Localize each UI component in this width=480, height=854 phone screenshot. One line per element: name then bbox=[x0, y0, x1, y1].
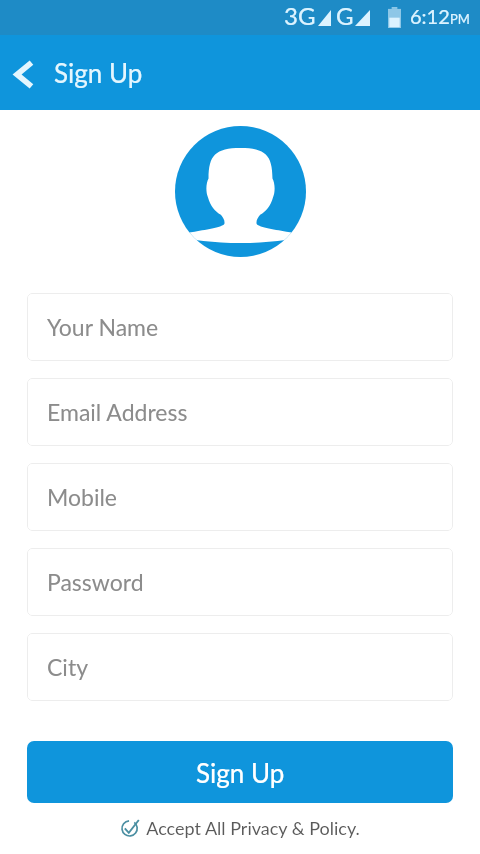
button[interactable]: Mobile bbox=[27, 463, 453, 531]
staticText: 6:12 bbox=[410, 4, 450, 28]
staticText: Password bbox=[47, 568, 144, 596]
button[interactable]: Your Name bbox=[27, 293, 453, 361]
staticText: Sign Up bbox=[196, 757, 285, 788]
staticText: 3G bbox=[284, 1, 316, 30]
button[interactable]: Email Address bbox=[27, 378, 453, 446]
staticText: Your Name bbox=[47, 313, 159, 341]
staticText: PM bbox=[450, 11, 470, 27]
staticText: Email Address bbox=[47, 398, 188, 426]
staticText: Mobile bbox=[47, 483, 118, 511]
button[interactable]: Password bbox=[27, 548, 453, 616]
staticText: G bbox=[336, 1, 354, 30]
button[interactable]: City bbox=[27, 633, 453, 701]
button[interactable]: Sign Up bbox=[27, 741, 453, 803]
staticText: Sign Up bbox=[54, 57, 143, 88]
button[interactable]: Back bbox=[1, 37, 45, 112]
staticText: Accept All Privacy & Policy. bbox=[146, 817, 360, 839]
staticText: City bbox=[47, 653, 88, 681]
button[interactable]: Accept All Privacy & Policy. bbox=[0, 817, 480, 839]
